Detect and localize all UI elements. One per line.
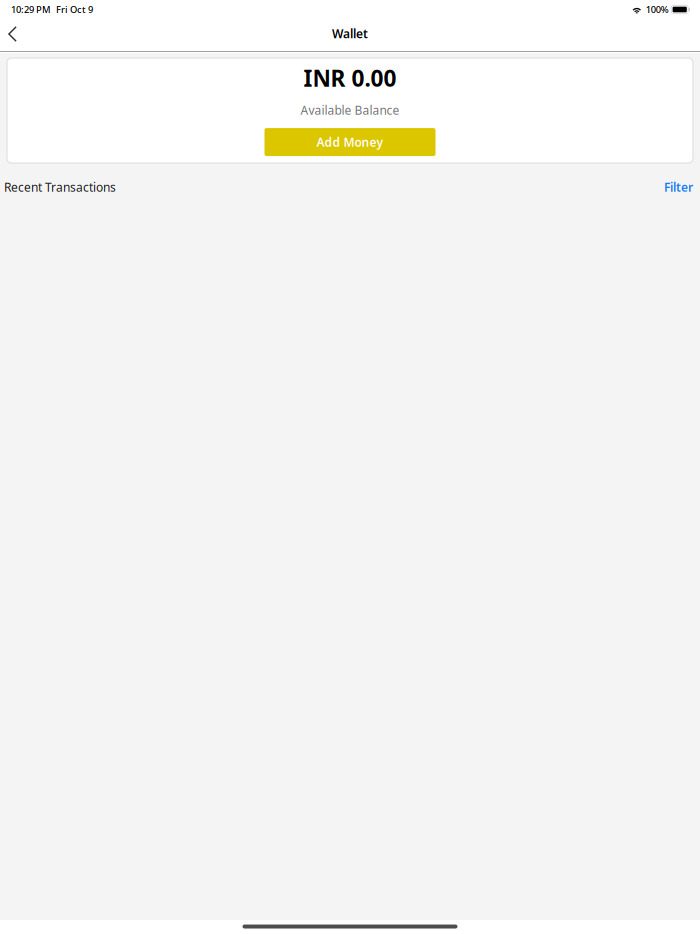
button[interactable]: Add Money <box>264 128 435 156</box>
staticText: Add Money <box>316 134 383 150</box>
staticText: Wallet <box>332 25 368 41</box>
staticText: Filter <box>664 179 693 195</box>
button[interactable]: Back <box>0 19 25 52</box>
staticText: Available Balance <box>300 102 399 118</box>
staticText: 10:29 PM <box>11 3 51 16</box>
button[interactable]: Filter <box>664 179 693 195</box>
staticText: 100% <box>646 3 669 16</box>
staticText: INR 0.00 <box>303 63 396 93</box>
staticText: Fri Oct 9 <box>56 3 93 16</box>
staticText: Recent Transactions <box>4 179 116 195</box>
